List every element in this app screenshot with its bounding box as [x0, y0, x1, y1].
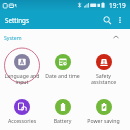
- button[interactable]: Safety assistance: [83, 46, 124, 91]
- button[interactable]: Collapse section: [110, 31, 122, 43]
- button[interactable]: More options: [114, 14, 126, 26]
- staticText: Battery: [42, 117, 83, 124]
- staticText: Date and time: [42, 72, 83, 79]
- staticText: Settings: [5, 16, 29, 25]
- button[interactable]: Accessories: [2, 91, 42, 130]
- staticText: Language and input: [2, 72, 42, 85]
- staticText: Power saving: [83, 117, 124, 124]
- staticText: Safety assistance: [83, 72, 124, 85]
- button[interactable]: Language and input: [2, 46, 42, 91]
- button[interactable]: Date and time: [42, 46, 83, 91]
- staticText: 19:19: [109, 1, 126, 10]
- staticText: Accessories: [2, 117, 42, 124]
- button[interactable]: Search: [100, 13, 114, 27]
- button[interactable]: Battery: [42, 91, 83, 130]
- staticText: System: [4, 34, 22, 41]
- button[interactable]: Power saving: [83, 91, 124, 130]
